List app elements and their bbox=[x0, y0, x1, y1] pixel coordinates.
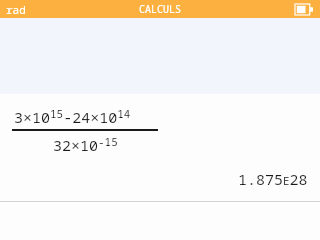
staticText: 3×1015-24×1014 bbox=[14, 106, 131, 127]
button[interactable]: Battery bbox=[295, 4, 313, 15]
button[interactable]: rad bbox=[6, 2, 26, 17]
staticText: 32×10-15 bbox=[53, 134, 118, 155]
staticText: 1.875E28 bbox=[238, 169, 308, 189]
button[interactable]: 1.875E28 bbox=[0, 169, 308, 189]
staticText: CALCULS bbox=[139, 2, 181, 16]
